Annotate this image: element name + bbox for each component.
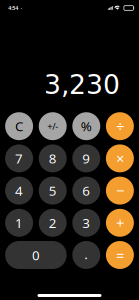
button[interactable]: . (72, 241, 100, 269)
button[interactable]: C (5, 112, 33, 140)
button[interactable]: 3 (72, 209, 100, 237)
staticText: = (116, 245, 124, 265)
button[interactable]: 8 (39, 144, 67, 172)
button[interactable]: × (106, 144, 134, 172)
staticText: 7 (15, 149, 23, 167)
staticText: % (81, 117, 92, 135)
button[interactable]: 6 (72, 177, 100, 205)
staticText: ÷ (116, 116, 124, 136)
button[interactable]: 1 (5, 209, 33, 237)
button[interactable]: ÷ (106, 112, 134, 140)
button[interactable]: = (106, 241, 134, 269)
button[interactable]: 9 (72, 144, 100, 172)
staticText: + (116, 213, 124, 233)
staticText: 6 (82, 182, 90, 199)
staticText: 5 (49, 182, 57, 199)
button[interactable]: % (72, 112, 100, 140)
button[interactable]: 2 (39, 209, 67, 237)
staticText: 3 (82, 214, 90, 232)
staticText: − (116, 181, 124, 200)
staticText: 9 (82, 149, 90, 167)
button[interactable]: 7 (5, 144, 33, 172)
staticText: 1 (15, 214, 23, 232)
button[interactable]: − (106, 177, 134, 205)
staticText: × (116, 149, 124, 168)
staticText: 2 (49, 214, 57, 232)
staticText: +/- (47, 120, 58, 132)
button[interactable]: 4 (5, 177, 33, 205)
staticText: 8 (49, 149, 57, 167)
staticText: . (84, 245, 88, 263)
staticText: C (15, 117, 23, 135)
staticText: 4 (15, 182, 23, 199)
button[interactable]: +/- (39, 112, 67, 140)
button[interactable]: 0 (5, 241, 67, 269)
staticText: 4:54 (8, 4, 18, 12)
button[interactable]: + (106, 209, 134, 237)
staticText: 3,230 (44, 69, 120, 100)
button[interactable]: 5 (39, 177, 67, 205)
staticText: 0 (32, 246, 40, 264)
